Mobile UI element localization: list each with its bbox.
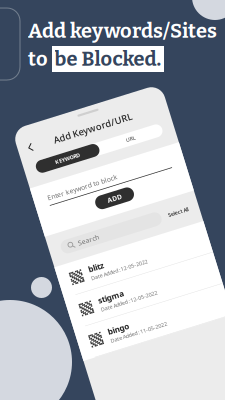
button[interactable]: Select All bbox=[136, 254, 157, 261]
staticText: Select All bbox=[136, 254, 157, 261]
staticText: KEYWORD bbox=[44, 170, 70, 177]
staticText: Add Keyword/URL bbox=[49, 146, 131, 158]
button[interactable]: stigma bbox=[12, 306, 168, 339]
staticText: be Blocked. bbox=[54, 47, 161, 71]
button[interactable]: URL bbox=[90, 167, 156, 180]
staticText: ADD bbox=[82, 221, 97, 230]
staticText: to bbox=[28, 47, 48, 71]
button[interactable]: KEYWORD bbox=[24, 167, 90, 180]
staticText: Search bbox=[41, 253, 63, 262]
staticText: Enter keyword to block bbox=[26, 201, 99, 210]
staticText: blitz bbox=[43, 281, 59, 291]
button[interactable]: blitz bbox=[12, 274, 168, 306]
button[interactable]: bingo bbox=[12, 339, 168, 372]
staticText: Date Added : 12-05-2022 bbox=[43, 325, 102, 332]
button[interactable]: Back bbox=[12, 144, 27, 161]
button[interactable]: ADD bbox=[70, 219, 110, 233]
staticText: stigma bbox=[43, 313, 70, 324]
staticText: Date Added : 12-05-2022 bbox=[43, 292, 102, 299]
staticText: Add keywords/Sites bbox=[28, 19, 217, 43]
staticText: Date Added : 11-05-2022 bbox=[43, 357, 102, 364]
